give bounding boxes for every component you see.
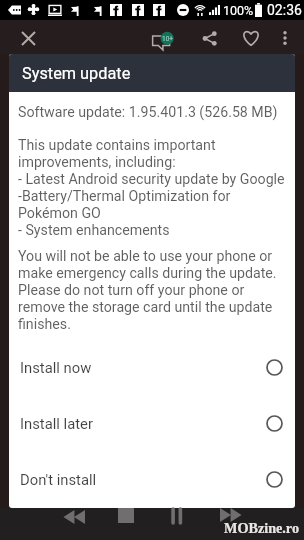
button[interactable]: Install later (18, 395, 288, 451)
staticText: MOBzine.ro (224, 520, 299, 536)
button[interactable]: Don't install (18, 451, 288, 507)
staticText: Software update: 1.95.401.3 (526.58 MB) (18, 104, 278, 121)
staticText: System update (22, 64, 131, 83)
button[interactable]: Pause (170, 508, 184, 524)
button[interactable]: Favorite (238, 25, 264, 51)
button[interactable]: Rewind (63, 510, 85, 524)
staticText: Don't install (20, 471, 266, 488)
button[interactable]: Share (196, 25, 222, 51)
button[interactable]: Install now (18, 339, 288, 395)
staticText: 100% (223, 3, 254, 18)
staticText: You will not be able to use your phone o… (18, 248, 288, 333)
button[interactable]: Comments (149, 29, 175, 55)
button[interactable]: More options (272, 25, 298, 51)
staticText: 10+ (162, 35, 173, 43)
button[interactable]: Forward (220, 508, 242, 522)
button[interactable]: Close (15, 25, 41, 51)
staticText: 02:36 (267, 2, 302, 18)
staticText: Install later (20, 415, 266, 432)
staticText: This update contains important improveme… (18, 137, 288, 239)
staticText: Install now (20, 359, 266, 376)
